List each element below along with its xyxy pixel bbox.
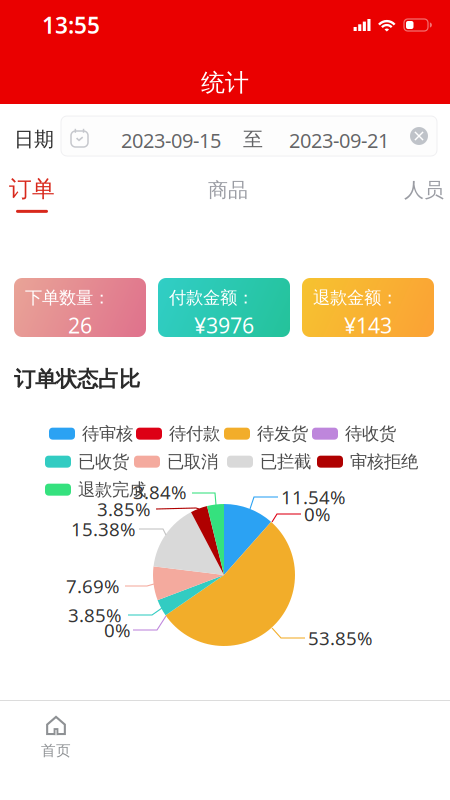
- staticText: 退款金额：: [313, 287, 398, 308]
- staticText: 13:55: [42, 10, 100, 40]
- button[interactable]: 首页: [0, 709, 112, 765]
- staticText: 0%: [104, 618, 131, 642]
- staticText: 订单: [9, 175, 55, 203]
- staticText: 待收货: [345, 423, 396, 444]
- staticText: 15.38%: [71, 517, 136, 541]
- button[interactable]: 商品: [200, 178, 256, 202]
- staticText: 待审核: [82, 423, 133, 444]
- staticText: 3.85%: [97, 497, 151, 521]
- staticText: 商品: [208, 178, 248, 202]
- staticText: 下单数量：: [25, 287, 110, 308]
- staticText: 26: [68, 311, 92, 339]
- staticText: 0%: [304, 502, 331, 526]
- staticText: 订单状态占比: [14, 366, 140, 392]
- staticText: 退款完成: [78, 479, 146, 500]
- staticText: 已收货: [78, 451, 129, 472]
- staticText: 统计: [201, 68, 249, 97]
- staticText: 3.84%: [133, 480, 187, 504]
- staticText: ¥3976: [194, 311, 254, 339]
- button[interactable]: 人员: [396, 178, 450, 202]
- staticText: 7.69%: [66, 574, 120, 598]
- staticText: 日期：: [14, 127, 74, 152]
- staticText: 53.85%: [308, 626, 373, 650]
- staticText: 3.85%: [68, 603, 122, 627]
- staticText: 已取消: [167, 451, 218, 472]
- staticText: 付款金额：: [169, 287, 254, 308]
- staticText: 已拦截: [260, 451, 311, 472]
- staticText: ¥143: [344, 311, 392, 339]
- staticText: 审核拒绝: [350, 451, 418, 472]
- staticText: 11.54%: [281, 485, 346, 509]
- staticText: 待发货: [257, 423, 308, 444]
- staticText: 人员: [404, 178, 444, 202]
- staticText: 2023-09-21: [289, 127, 389, 154]
- staticText: 待付款: [169, 423, 220, 444]
- staticText: 至: [243, 127, 263, 152]
- button[interactable]: 2023-09-15: [61, 116, 437, 156]
- staticText: 首页: [41, 741, 71, 759]
- staticText: 2023-09-15: [121, 127, 221, 154]
- button[interactable]: 订单: [4, 175, 60, 213]
